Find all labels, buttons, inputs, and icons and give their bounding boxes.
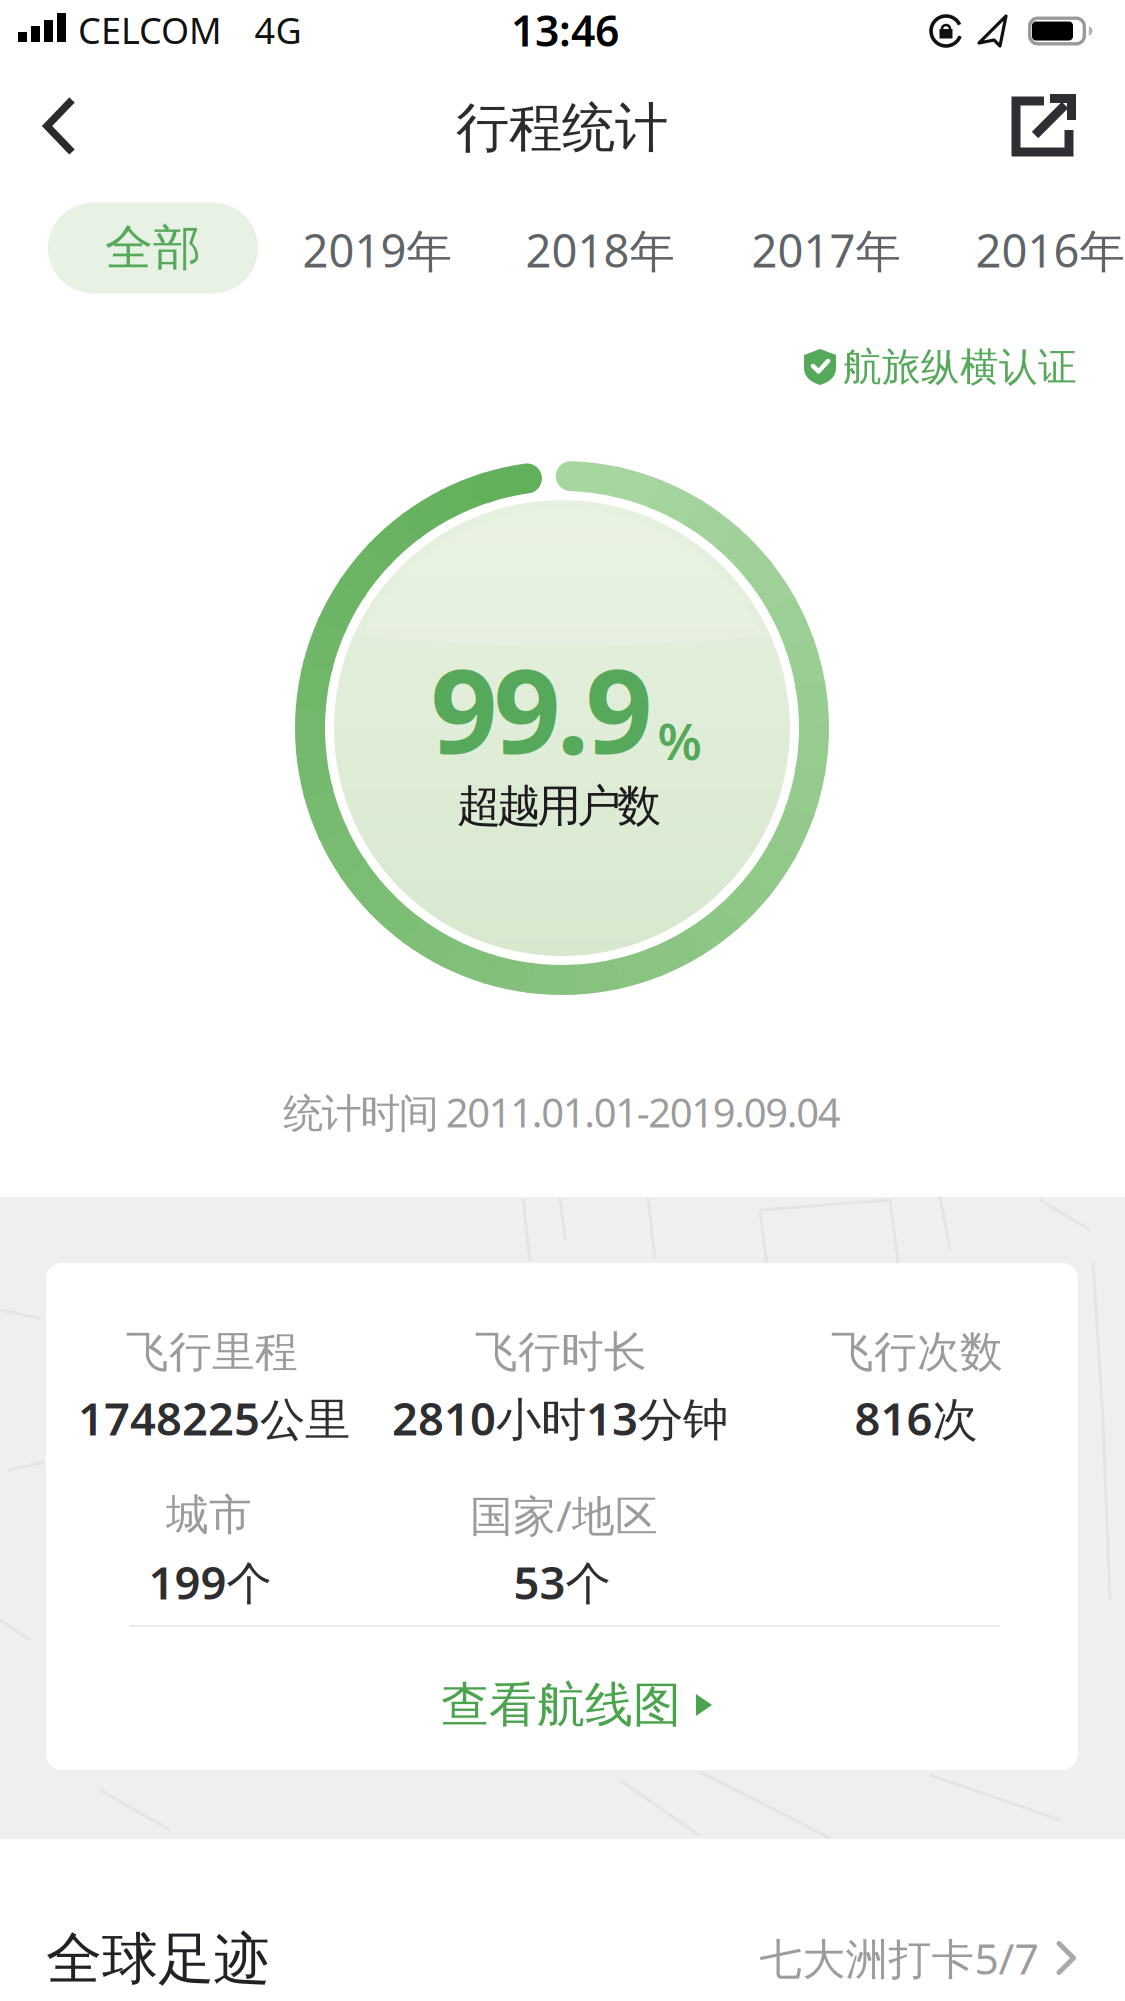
staticText: 4G — [254, 6, 301, 54]
staticText: 2810小时13分钟 — [392, 1388, 728, 1448]
button[interactable]: 2016年 — [950, 205, 1125, 295]
staticText: 2017年 — [751, 220, 900, 280]
staticText: CELCOM — [78, 6, 222, 54]
staticText: 全部 — [105, 218, 201, 277]
staticText: 超越用户数 — [457, 779, 661, 833]
staticText: 13:46 — [511, 2, 619, 58]
staticText: % — [657, 707, 701, 774]
staticText: 99.9 — [430, 630, 652, 786]
staticText: 统计时间 2011.01.01-2019.09.04 — [283, 1085, 841, 1138]
staticText: 2016年 — [975, 220, 1124, 280]
staticText: 城市 — [166, 1489, 252, 1541]
button[interactable]: 2017年 — [726, 205, 926, 295]
staticText: 飞行时长 — [475, 1326, 647, 1378]
staticText: 行程统计 — [456, 95, 668, 161]
staticText: 2018年 — [525, 220, 674, 280]
staticText: 2019年 — [302, 220, 451, 280]
staticText: 全球足迹 — [46, 1925, 270, 1993]
button[interactable]: 查看航线图 — [441, 1675, 713, 1734]
button[interactable]: 2019年 — [277, 205, 477, 295]
staticText: 航旅纵横认证 — [843, 343, 1077, 391]
staticText: 53个 — [513, 1552, 610, 1612]
button[interactable]: 2018年 — [500, 205, 700, 295]
staticText: 816次 — [854, 1388, 977, 1448]
button[interactable]: 全部 — [48, 202, 258, 293]
button[interactable]: Back — [17, 90, 107, 162]
staticText: 七大洲打卡5/7 — [759, 1930, 1038, 1986]
staticText: 国家/地区 — [470, 1487, 658, 1543]
staticText: 1748225公里 — [78, 1388, 350, 1448]
staticText: 飞行次数 — [831, 1326, 1003, 1378]
button[interactable]: 七大洲打卡5/7 — [759, 1930, 1076, 1986]
staticText: 飞行里程 — [126, 1326, 298, 1378]
staticText: 查看航线图 — [441, 1675, 681, 1734]
staticText: 199个 — [148, 1552, 271, 1612]
button[interactable]: Share — [1011, 94, 1077, 158]
